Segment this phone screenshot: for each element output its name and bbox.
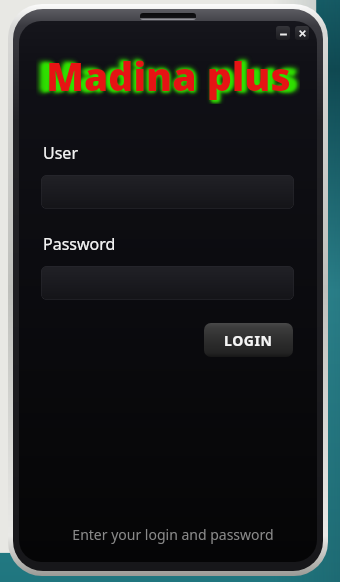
staticText: User <box>43 142 78 164</box>
staticText: Enter your login and password <box>39 525 307 544</box>
button[interactable]: Close <box>295 26 309 40</box>
staticText: Madina plus <box>36 47 300 104</box>
staticText: Madina plus <box>40 48 297 104</box>
staticText: LOGIN <box>224 331 273 350</box>
staticText: Password <box>43 233 116 255</box>
staticText: Madina plus <box>46 49 291 102</box>
button[interactable]: LOGIN <box>204 323 293 357</box>
button[interactable] <box>41 175 294 209</box>
button[interactable]: Minimize <box>276 26 290 40</box>
button[interactable] <box>41 266 294 300</box>
